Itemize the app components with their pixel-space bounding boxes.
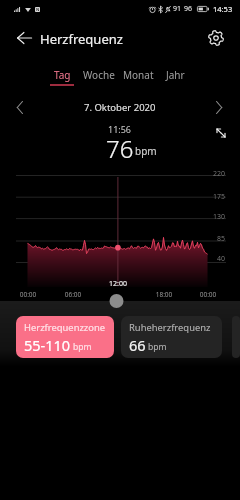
button[interactable]: Woche	[82, 68, 116, 86]
staticText: Woche	[83, 68, 115, 82]
staticText: bpm	[135, 144, 157, 158]
button[interactable]: Herzfrequenzzone	[16, 316, 114, 358]
staticText: 130	[213, 212, 226, 222]
staticText: 175	[213, 192, 226, 202]
staticText: 06:00	[56, 290, 90, 299]
staticText: 12:00	[101, 279, 135, 289]
staticText: 00:00	[191, 290, 225, 299]
staticText: 11:56	[108, 123, 132, 135]
staticText: 00:00	[11, 290, 45, 299]
staticText: 91	[173, 4, 182, 14]
staticText: bpm	[148, 341, 167, 353]
staticText: Herzfrequenzzone	[24, 321, 106, 334]
staticText: bpm	[73, 341, 92, 353]
button[interactable]	[232, 316, 240, 358]
staticText: Monat	[123, 68, 154, 82]
staticText: 7. Oktober 2020	[84, 101, 156, 114]
button[interactable]: Expand	[214, 126, 228, 140]
staticText: 18:00	[147, 290, 181, 299]
button[interactable]: Previous day	[13, 98, 26, 117]
staticText: 66	[129, 335, 146, 355]
staticText: Ruheherzfrequenz	[129, 321, 211, 334]
button[interactable]: Settings	[204, 26, 228, 50]
staticText: 55-110	[24, 335, 71, 355]
button[interactable]: Tag	[49, 68, 75, 86]
button[interactable]: Next day	[213, 98, 226, 117]
staticText: N	[36, 7, 40, 12]
staticText: 96	[184, 4, 193, 14]
staticText: Herzfrequenz	[40, 30, 123, 48]
staticText: 14:53	[213, 4, 233, 14]
button[interactable]: Ruheherzfrequenz	[121, 316, 222, 358]
staticText: 85	[217, 234, 226, 244]
button[interactable]: Back	[13, 28, 36, 48]
staticText: 40	[217, 254, 226, 264]
staticText: Jahr	[166, 68, 185, 82]
staticText: Tag	[54, 68, 71, 82]
staticText: 220	[213, 169, 226, 179]
button[interactable]: Monat	[122, 68, 155, 86]
staticText: 76	[106, 132, 134, 165]
button[interactable]: Jahr	[162, 68, 188, 86]
